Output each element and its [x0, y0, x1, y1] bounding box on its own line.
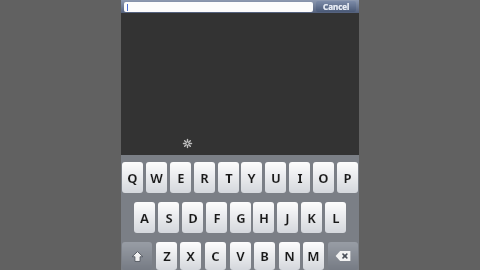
- button[interactable]: [124, 2, 313, 12]
- button[interactable]: Backspace: [328, 242, 358, 270]
- staticText: F: [213, 209, 221, 227]
- button[interactable]: K: [301, 202, 322, 233]
- button[interactable]: U: [265, 162, 286, 193]
- staticText: H: [259, 209, 269, 227]
- button[interactable]: J: [277, 202, 298, 233]
- staticText: O: [318, 169, 329, 187]
- button[interactable]: L: [325, 202, 346, 233]
- staticText: U: [271, 169, 281, 187]
- staticText: B: [260, 247, 269, 265]
- staticText: P: [343, 169, 352, 187]
- button[interactable]: Cancel: [316, 1, 356, 12]
- staticText: W: [150, 169, 163, 187]
- button[interactable]: T: [218, 162, 239, 193]
- button[interactable]: Shift: [122, 242, 152, 270]
- button[interactable]: Loading: [183, 139, 192, 148]
- staticText: S: [165, 209, 173, 227]
- staticText: I: [297, 169, 303, 187]
- button[interactable]: D: [182, 202, 203, 233]
- staticText: D: [188, 209, 198, 227]
- staticText: X: [186, 247, 195, 265]
- button[interactable]: I: [289, 162, 310, 193]
- staticText: E: [177, 169, 185, 187]
- staticText: R: [200, 169, 209, 187]
- staticText: T: [225, 169, 233, 187]
- staticText: C: [211, 247, 220, 265]
- staticText: Z: [163, 247, 171, 265]
- button[interactable]: R: [194, 162, 215, 193]
- button[interactable]: S: [158, 202, 179, 233]
- button[interactable]: B: [254, 242, 275, 270]
- button[interactable]: M: [303, 242, 324, 270]
- button[interactable]: V: [230, 242, 251, 270]
- button[interactable]: Z: [156, 242, 177, 270]
- button[interactable]: P: [337, 162, 358, 193]
- staticText: Cancel: [323, 1, 350, 12]
- button[interactable]: Y: [241, 162, 262, 193]
- button[interactable]: G: [230, 202, 251, 233]
- staticText: L: [332, 209, 340, 227]
- button[interactable]: N: [279, 242, 300, 270]
- staticText: A: [140, 209, 149, 227]
- button[interactable]: X: [180, 242, 201, 270]
- staticText: Q: [127, 169, 138, 187]
- button[interactable]: F: [206, 202, 227, 233]
- button[interactable]: C: [205, 242, 226, 270]
- staticText: M: [307, 247, 320, 265]
- staticText: N: [284, 247, 295, 265]
- button[interactable]: O: [313, 162, 334, 193]
- staticText: V: [236, 247, 245, 265]
- staticText: G: [236, 209, 246, 227]
- button[interactable]: W: [146, 162, 167, 193]
- staticText: K: [307, 209, 316, 227]
- button[interactable]: H: [253, 202, 274, 233]
- staticText: Y: [247, 169, 256, 187]
- button[interactable]: E: [170, 162, 191, 193]
- button[interactable]: A: [134, 202, 155, 233]
- staticText: J: [285, 209, 290, 227]
- button[interactable]: Q: [122, 162, 143, 193]
